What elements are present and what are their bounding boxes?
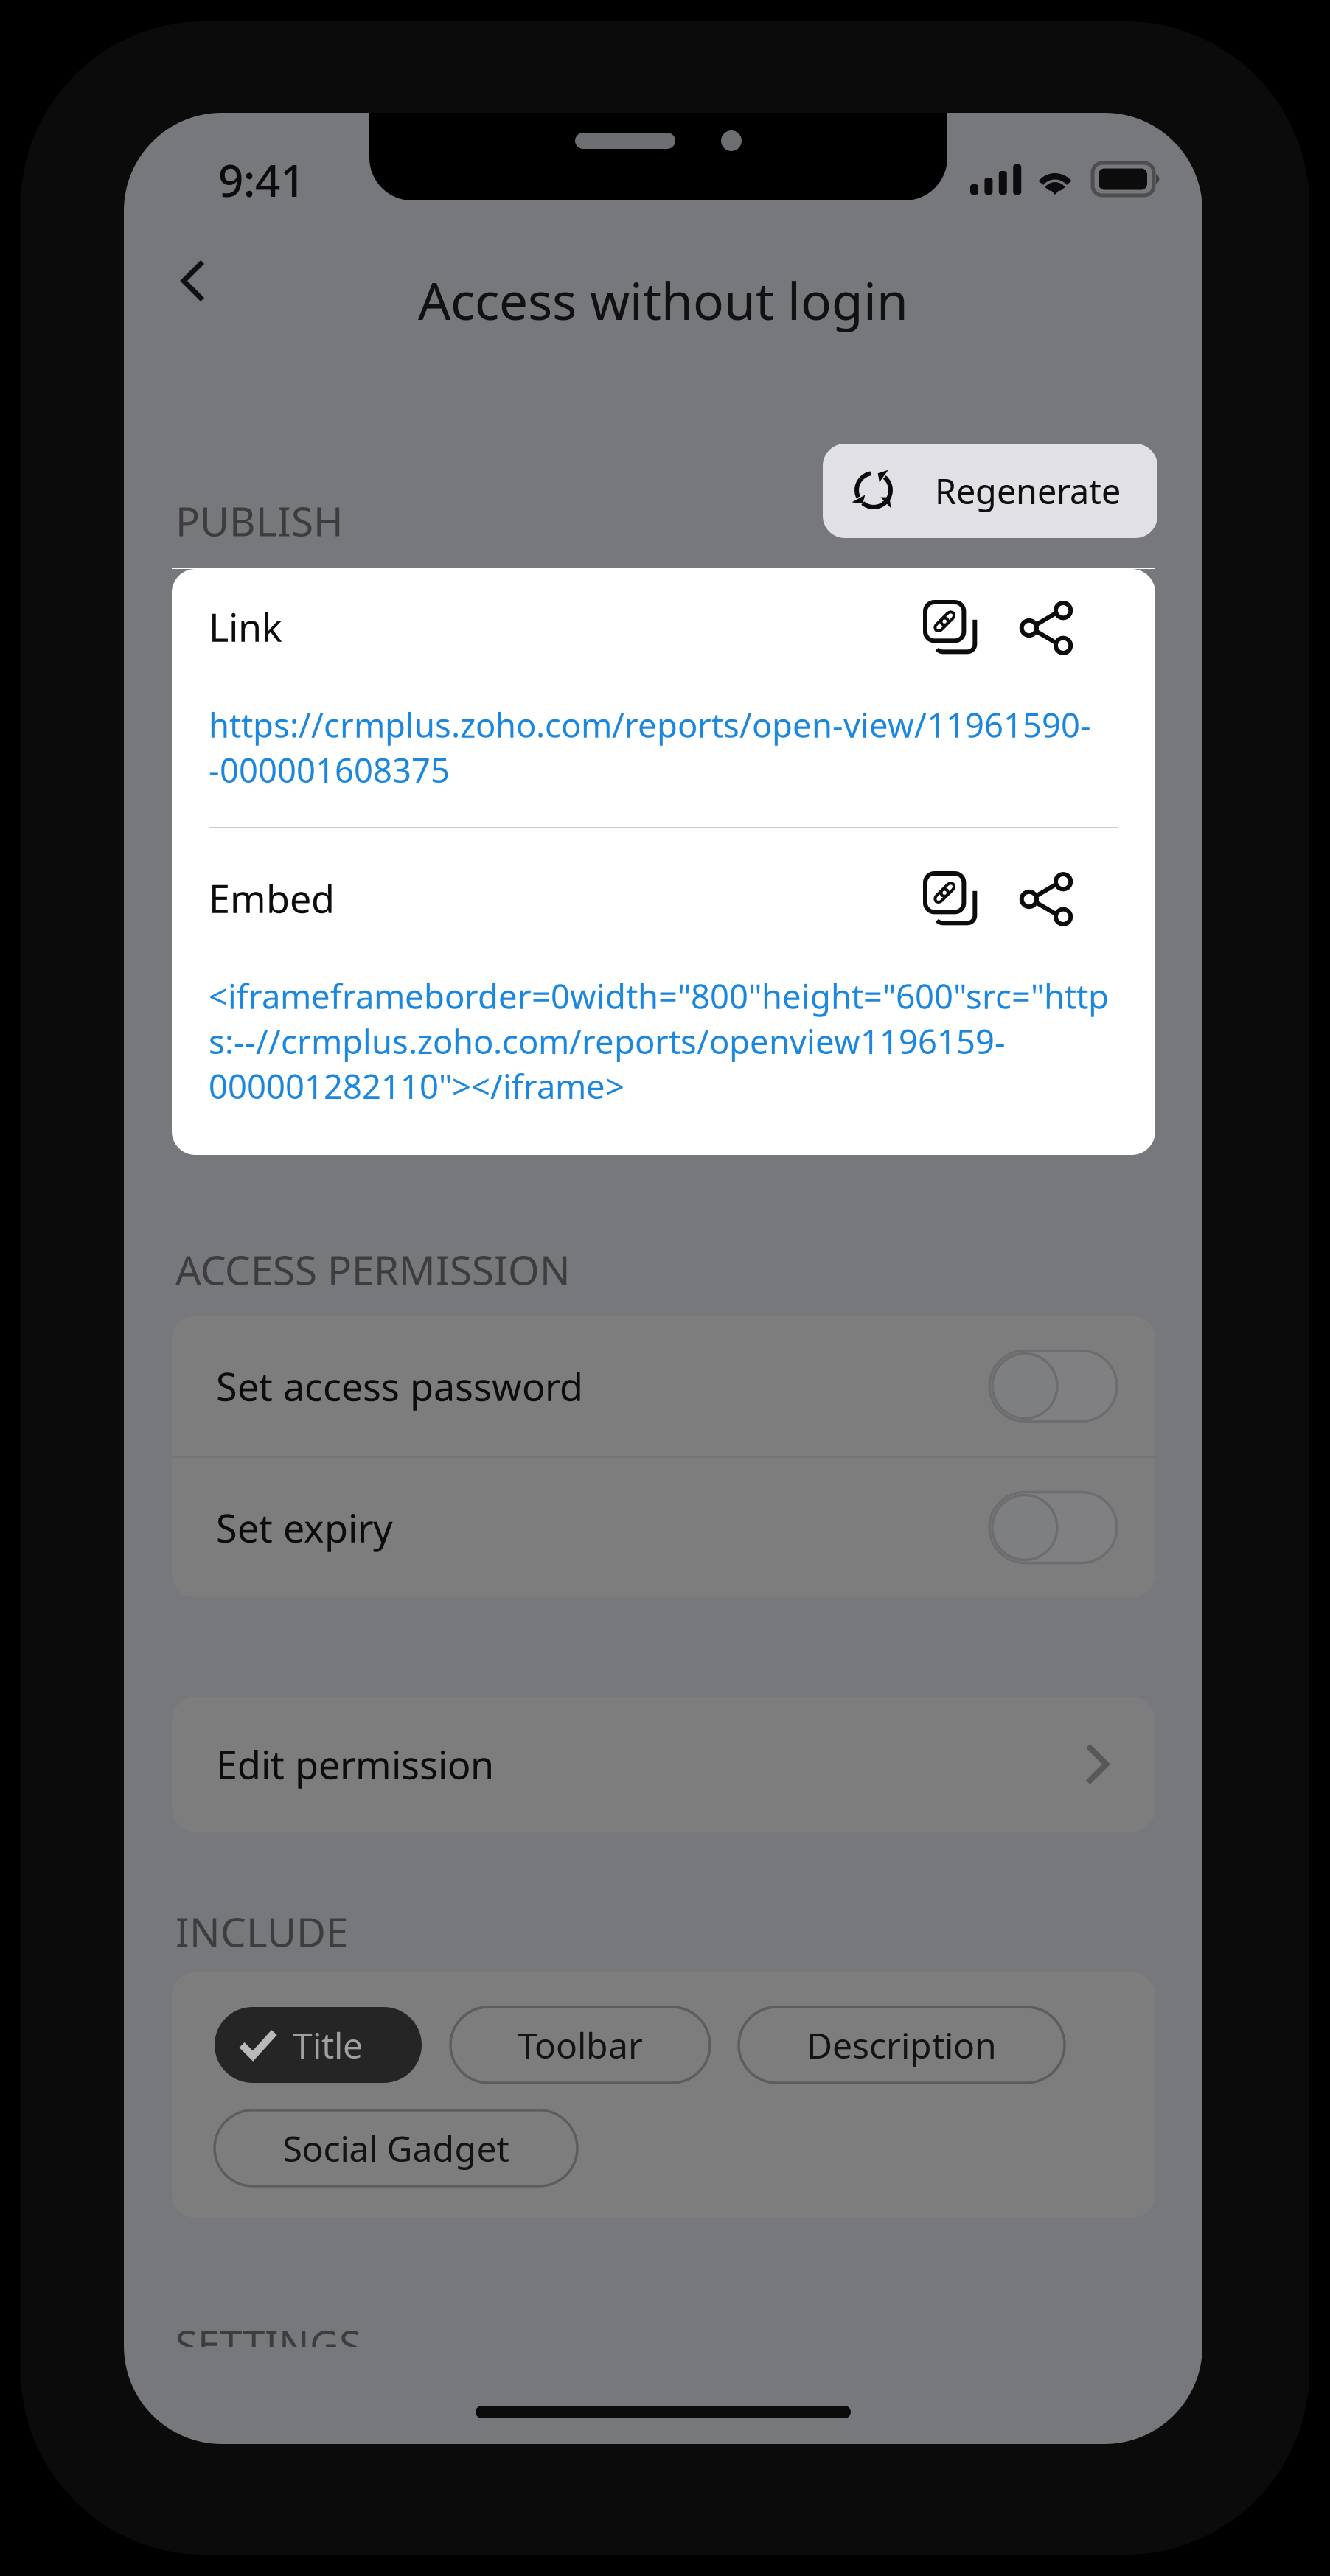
button[interactable]: Title (215, 2007, 422, 2083)
staticText: <iframeframeborder=0width="800"height="6… (209, 974, 1109, 1018)
staticText: PUBLISH (175, 494, 344, 547)
staticText: SETTINGS (175, 2317, 361, 2371)
staticText: Set access password (216, 1361, 583, 1412)
button[interactable]: Social Gadget (215, 2110, 577, 2186)
staticText: Title (293, 2021, 363, 2068)
staticText: ACCESS PERMISSION (175, 1243, 571, 1296)
staticText: 9:41 (218, 150, 305, 209)
staticText: Edit permission (216, 1739, 494, 1790)
button[interactable]: Description (739, 2007, 1065, 2083)
button[interactable]: Back (150, 240, 237, 321)
staticText: Description (807, 2021, 997, 2068)
staticText: 000001282110"></iframe> (209, 1064, 624, 1108)
button[interactable]: Share Link (1009, 590, 1084, 666)
staticText: Social Gadget (283, 2125, 509, 2172)
staticText: Link (209, 601, 282, 652)
staticText: s:--//crmplus.zoho.com/reports/openview1… (209, 1019, 1006, 1063)
button[interactable]: Toolbar (450, 2007, 710, 2083)
button[interactable]: Edit permission (172, 1697, 1155, 1832)
staticText: https://crmplus.zoho.com/reports/open-vi… (209, 702, 1091, 747)
button[interactable]: Regenerate (823, 444, 1157, 538)
staticText: INCLUDE (175, 1905, 348, 1958)
button[interactable]: Share Embed (1009, 862, 1084, 937)
staticText: Toolbar (518, 2021, 643, 2068)
button[interactable]: Copy Embed (913, 862, 987, 935)
staticText: Access without login (418, 266, 908, 334)
staticText: Embed (209, 873, 335, 924)
staticText: Set expiry (216, 1502, 393, 1553)
staticText: Regenerate (935, 468, 1121, 514)
staticText: -000001608375 (209, 748, 450, 792)
button[interactable]: Copy Link (913, 590, 987, 664)
